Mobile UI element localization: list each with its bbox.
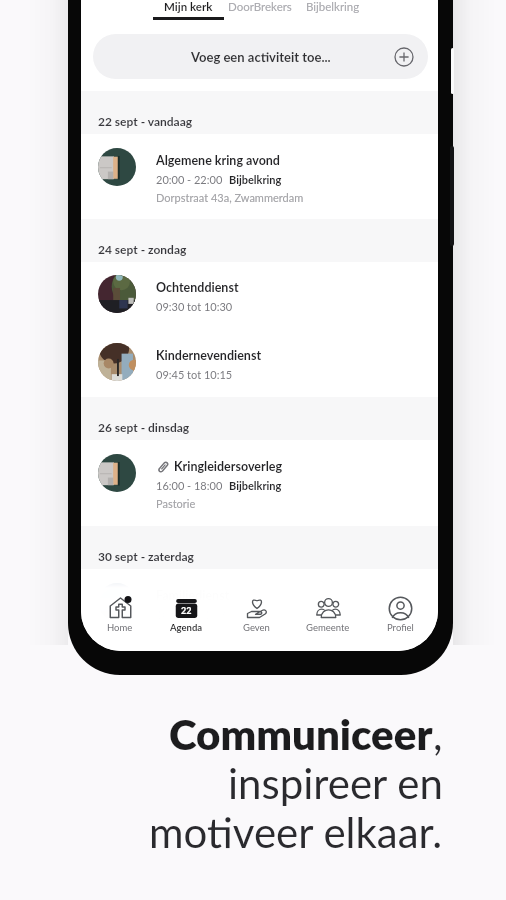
button[interactable]: Mijn kerk <box>152 0 224 26</box>
button[interactable]: Gemeente <box>295 588 361 640</box>
staticText: 24 sept - zondag <box>98 242 187 256</box>
staticText: Pastorie <box>156 497 196 510</box>
staticText: 30 sept - zaterdag <box>98 549 194 563</box>
button[interactable]: Kringleidersoverleg <box>81 440 438 526</box>
staticText: Bijbelkring <box>306 0 360 14</box>
button[interactable]: Ochtenddienst <box>81 261 438 329</box>
staticText: Dorpstraat 43a, Zwammerdam <box>156 191 304 204</box>
staticText: , <box>433 709 443 759</box>
staticText: Familiedienst <box>156 588 230 603</box>
staticText: Bijbelkring <box>229 173 282 186</box>
button[interactable]: Familiedienst <box>81 569 438 637</box>
staticText: Kringleidersoverleg <box>174 459 283 474</box>
button[interactable]: Voeg een activiteit toe... <box>93 34 428 79</box>
staticText: motiveer elkaar. <box>149 807 443 857</box>
staticText: DoorBrekers <box>228 0 292 14</box>
staticText: Ochtenddienst <box>156 280 239 295</box>
button[interactable]: Kindernevendienst <box>81 329 438 397</box>
staticText: 16:00 - 18:00 <box>156 479 223 492</box>
button[interactable]: Agenda <box>153 588 219 640</box>
button[interactable]: Algemene kring avond <box>81 134 438 220</box>
button[interactable]: Bijbelkring <box>297 0 369 26</box>
staticText: 09:45 tot 10:15 <box>156 368 233 381</box>
button[interactable]: Geven <box>223 588 289 640</box>
staticText: 20:00 - 22:00 <box>156 173 223 186</box>
staticText: Geven <box>243 622 270 633</box>
staticText: 09:30 tot 10:30 <box>156 300 233 313</box>
staticText: Mijn kerk <box>164 0 213 14</box>
button[interactable]: Home <box>87 588 153 640</box>
staticText: Communiceer <box>169 709 433 759</box>
staticText: Bijbelkring <box>229 479 282 492</box>
staticText: 22 <box>181 605 192 616</box>
staticText: Voeg een activiteit toe... <box>191 49 331 65</box>
staticText: Profiel <box>387 622 414 633</box>
staticText: Algemene kring avond <box>156 153 280 168</box>
button[interactable]: Profiel <box>367 588 433 640</box>
staticText: 26 sept - dinsdag <box>98 420 190 434</box>
staticText: 10:00 tot 11:30 <box>156 608 233 621</box>
staticText: inspireer en <box>228 758 443 808</box>
staticText: Kindernevendienst <box>156 348 262 363</box>
staticText: Home <box>107 622 133 633</box>
staticText: Agenda <box>170 622 203 633</box>
button[interactable]: DoorBrekers <box>224 0 296 26</box>
staticText: Gemeente <box>306 622 350 633</box>
staticText: 22 sept - vandaag <box>98 114 193 128</box>
